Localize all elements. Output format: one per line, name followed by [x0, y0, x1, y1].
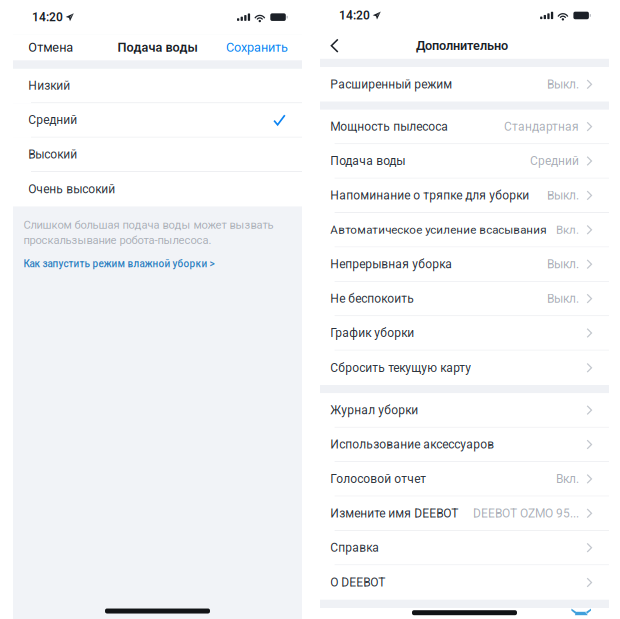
- staticText: О DEEBOT: [330, 575, 385, 590]
- staticText: Низкий: [28, 79, 70, 93]
- staticText: Напоминание о тряпке для уборки: [330, 188, 529, 202]
- staticText: Выкл.: [547, 257, 579, 271]
- button[interactable]: Автоматическое усиление всасывания: [320, 213, 609, 247]
- staticText: Отмена: [28, 40, 73, 55]
- button[interactable]: Мощность пылесоса: [320, 110, 609, 144]
- staticText: Журнал уборки: [330, 403, 418, 417]
- button[interactable]: Отмена: [28, 34, 73, 61]
- staticText: График уборки: [330, 326, 414, 340]
- button[interactable]: Расширенный режим: [320, 67, 609, 101]
- staticText: проскальзывание робота-пылесоса.: [23, 234, 211, 247]
- staticText: Подача воды: [330, 154, 405, 168]
- staticText: Выкл.: [547, 292, 579, 306]
- staticText: DEEBOT OZMO 95...: [473, 506, 579, 520]
- button[interactable]: Сохранить: [226, 34, 288, 61]
- button[interactable]: Средний: [13, 103, 302, 138]
- staticText: Голосовой отчет: [330, 472, 426, 486]
- button[interactable]: О DEEBOT: [320, 565, 609, 600]
- button[interactable]: Голосовой отчет: [320, 462, 609, 496]
- staticText: Вкл.: [556, 223, 579, 237]
- staticText: Вкл.: [556, 472, 579, 486]
- button[interactable]: Как запустить режим влажной уборки >: [23, 258, 214, 269]
- staticText: Слишком большая подача воды может вызват…: [23, 218, 273, 231]
- button[interactable]: Назад: [320, 33, 349, 59]
- button[interactable]: Измените имя DEEBOT: [320, 496, 609, 531]
- staticText: 14:20: [32, 10, 63, 24]
- staticText: Средний: [530, 154, 579, 168]
- staticText: Не беспокоить: [330, 292, 414, 306]
- button[interactable]: Очень высокий: [13, 172, 302, 206]
- staticText: Выкл.: [547, 188, 579, 202]
- staticText: Очень высокий: [28, 182, 115, 196]
- staticText: Выкл.: [547, 77, 579, 91]
- staticText: Справка: [330, 541, 379, 555]
- staticText: Сбросить текущую карту: [330, 361, 471, 375]
- staticText: Использование аксессуаров: [330, 437, 494, 452]
- staticText: Мощность пылесоса: [330, 120, 448, 134]
- staticText: Непрерывная уборка: [330, 257, 452, 271]
- staticText: Дополнительно: [416, 38, 508, 53]
- button[interactable]: Не беспокоить: [320, 282, 609, 316]
- button[interactable]: Непрерывная уборка: [320, 247, 609, 282]
- staticText: Сохранить: [226, 40, 288, 55]
- staticText: Как запустить режим влажной уборки >: [23, 258, 214, 269]
- button[interactable]: Справка: [320, 531, 609, 565]
- staticText: Подача воды: [117, 40, 197, 55]
- button[interactable]: Напоминание о тряпке для уборки: [320, 179, 609, 213]
- staticText: Автоматическое усиление всасывания: [330, 223, 546, 237]
- staticText: Высокий: [28, 147, 77, 161]
- button[interactable]: Подача воды: [320, 144, 609, 179]
- staticText: Расширенный режим: [330, 77, 452, 91]
- button[interactable]: График уборки: [320, 316, 609, 351]
- button[interactable]: Сбросить текущую карту: [320, 351, 609, 385]
- staticText: 14:20: [339, 8, 370, 22]
- button[interactable]: Использование аксессуаров: [320, 428, 609, 462]
- button[interactable]: Журнал уборки: [320, 393, 609, 428]
- staticText: Измените имя DEEBOT: [330, 506, 458, 520]
- staticText: Средний: [28, 113, 77, 127]
- staticText: Стандартная: [504, 120, 579, 134]
- button[interactable]: Высокий: [13, 138, 302, 172]
- button[interactable]: Низкий: [13, 69, 302, 103]
